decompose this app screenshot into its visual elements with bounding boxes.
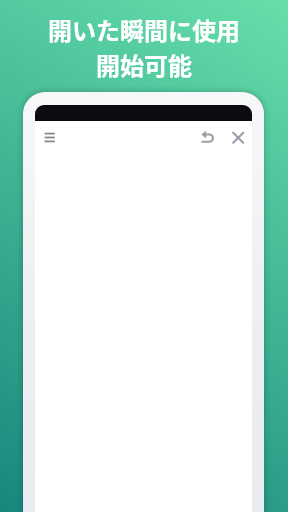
staticText: 開始可能 [96,47,192,82]
button[interactable] [196,125,220,149]
staticText: 開いた瞬間に使用 [48,12,240,47]
button[interactable] [38,126,62,148]
button[interactable] [227,125,251,149]
